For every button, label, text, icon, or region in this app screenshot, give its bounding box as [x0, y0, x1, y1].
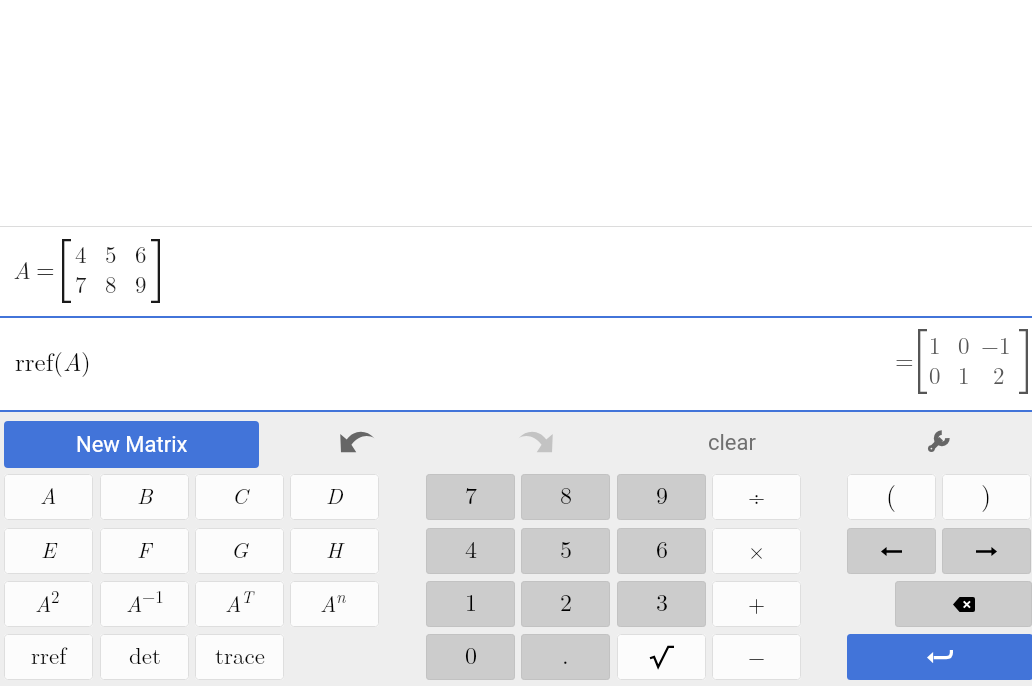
- staticText: 7: [465, 477, 477, 511]
- staticText: ÷: [748, 480, 766, 511]
- button[interactable]: H: [290, 528, 379, 574]
- staticText: rref: [31, 638, 67, 671]
- staticText: 5: [560, 531, 572, 565]
- button[interactable]: 6: [617, 528, 706, 574]
- staticText: A: [35, 587, 52, 618]
- staticText: .: [562, 637, 569, 671]
- button[interactable]: 7: [426, 474, 515, 520]
- button[interactable]: Move right: [942, 528, 1031, 574]
- button[interactable]: 0: [426, 634, 515, 680]
- button[interactable]: New Matrix: [4, 421, 259, 468]
- button[interactable]: ÷: [712, 474, 801, 520]
- button[interactable]: +: [712, 581, 801, 627]
- staticText: 4: [465, 531, 477, 565]
- button[interactable]: 4: [426, 528, 515, 574]
- staticText: A: [320, 587, 337, 618]
- staticText: 2: [51, 584, 60, 608]
- staticText: 1: [958, 358, 970, 391]
- staticText: 3: [656, 584, 668, 618]
- staticText: +: [748, 587, 766, 618]
- button[interactable]: trace: [195, 634, 284, 680]
- staticText: (: [886, 476, 897, 513]
- staticText: T: [241, 584, 254, 608]
- staticText: E: [41, 533, 56, 564]
- button[interactable]: −: [712, 634, 801, 680]
- staticText: 9: [135, 267, 147, 300]
- staticText: ): [81, 343, 91, 378]
- button[interactable]: Undo: [331, 421, 383, 461]
- button[interactable]: Settings: [914, 421, 963, 461]
- staticText: New Matrix: [76, 432, 188, 458]
- staticText: D: [326, 479, 343, 510]
- staticText: 0: [958, 328, 970, 361]
- button[interactable]: rref: [4, 634, 93, 680]
- button[interactable]: Backspace: [895, 581, 1032, 627]
- staticText: B: [137, 479, 153, 510]
- staticText: A: [63, 343, 82, 378]
- staticText: A: [40, 479, 57, 510]
- button[interactable]: .: [521, 634, 610, 680]
- button[interactable]: D: [290, 474, 379, 520]
- button[interactable]: Redo: [510, 421, 562, 461]
- staticText: −: [748, 640, 766, 671]
- button[interactable]: 1: [426, 581, 515, 627]
- staticText: trace: [215, 638, 265, 671]
- staticText: A: [13, 252, 31, 286]
- staticText: A: [225, 587, 242, 618]
- staticText: G: [231, 533, 249, 564]
- staticText: det: [129, 638, 161, 671]
- staticText: 1: [929, 328, 941, 361]
- staticText: 8: [560, 477, 572, 511]
- staticText: =: [36, 251, 55, 285]
- button[interactable]: 2: [521, 581, 610, 627]
- button[interactable]: clear: [698, 425, 766, 463]
- staticText: 4: [75, 237, 87, 270]
- staticText: 1: [465, 584, 477, 618]
- staticText: ×: [748, 534, 766, 565]
- staticText: F: [137, 533, 152, 564]
- button[interactable]: B: [100, 474, 189, 520]
- staticText: 2: [560, 584, 572, 618]
- staticText: C: [232, 479, 248, 510]
- button[interactable]: 5: [521, 528, 610, 574]
- staticText: A: [126, 587, 143, 618]
- button[interactable]: E: [4, 528, 93, 574]
- staticText: 6: [135, 237, 147, 270]
- staticText: 0: [465, 637, 477, 671]
- staticText: H: [326, 533, 343, 564]
- button[interactable]: Move left: [847, 528, 936, 574]
- staticText: 8: [105, 267, 117, 300]
- button[interactable]: 9: [617, 474, 706, 520]
- staticText: ): [981, 476, 992, 513]
- staticText: −1: [981, 328, 1011, 361]
- button[interactable]: ×: [712, 528, 801, 574]
- staticText: =: [895, 342, 914, 376]
- button[interactable]: C: [195, 474, 284, 520]
- staticText: 0: [929, 358, 941, 391]
- button[interactable]: (: [847, 474, 936, 520]
- staticText: −1: [142, 584, 164, 608]
- staticText: 5: [105, 237, 117, 270]
- button[interactable]: A superscript T: [195, 581, 284, 627]
- button[interactable]: A superscript 2: [4, 581, 93, 627]
- button[interactable]: ): [942, 474, 1031, 520]
- staticText: 9: [656, 477, 668, 511]
- button[interactable]: det: [100, 634, 189, 680]
- staticText: 6: [656, 531, 668, 565]
- button[interactable]: 3: [617, 581, 706, 627]
- button[interactable]: Enter: [847, 634, 1032, 680]
- staticText: clear: [708, 430, 756, 456]
- staticText: n: [336, 584, 346, 608]
- button[interactable]: Square root: [617, 634, 706, 680]
- button[interactable]: F: [100, 528, 189, 574]
- button[interactable]: G: [195, 528, 284, 574]
- staticText: 2: [993, 358, 1005, 391]
- button[interactable]: A superscript n: [290, 581, 379, 627]
- button[interactable]: A superscript −1: [100, 581, 189, 627]
- staticText: 7: [75, 267, 87, 300]
- staticText: rref(: [15, 343, 64, 378]
- button[interactable]: 8: [521, 474, 610, 520]
- button[interactable]: A: [4, 474, 93, 520]
